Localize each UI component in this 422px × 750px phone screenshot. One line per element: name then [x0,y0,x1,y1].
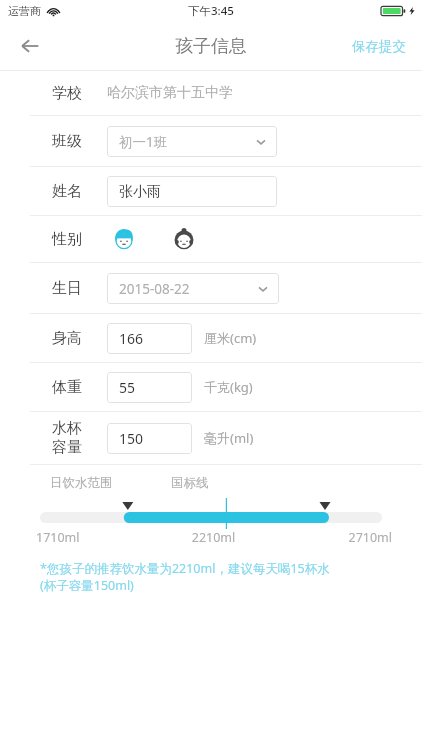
staticText: (杯子容量150ml) [40,577,134,594]
button[interactable]: Boy [107,222,141,256]
staticText: 2210ml [154,529,273,546]
staticText: 哈尔滨市第十五中学 [107,84,233,102]
staticText: 55 [119,378,136,397]
button[interactable]: 生日 [0,263,422,313]
staticText: *您孩子的推荐饮水量为2210ml，建议每天喝15杯水 [40,560,330,577]
staticText: 初一1班 [119,133,168,151]
staticText: 姓名 [52,182,88,201]
button[interactable]: 姓名 [0,167,422,215]
button[interactable]: 学校 [0,71,422,115]
staticText: 孩子信息 [175,35,247,58]
button[interactable]: 166 [107,323,192,354]
staticText: 下午3:45 [188,3,234,19]
button[interactable]: 初一1班 [107,126,277,157]
button[interactable]: 55 [107,372,192,403]
staticText: 千克(kg) [204,378,253,396]
button[interactable]: 身高 [0,314,422,362]
button[interactable]: 性别 [0,216,422,262]
staticText: 厘米(cm) [204,329,257,347]
button[interactable]: Back [8,24,52,68]
staticText: 容量 [52,438,82,457]
staticText: 1710ml [36,529,154,546]
staticText: 166 [119,329,144,348]
button[interactable] [40,495,382,525]
staticText: 张小雨 [119,183,161,201]
staticText: 性别 [52,230,88,249]
staticText: 保存提交 [352,38,406,55]
button[interactable]: 水杯 [0,412,422,464]
staticText: 体重 [52,378,88,397]
staticText: 班级 [52,132,88,151]
staticText: 150 [119,429,144,448]
button[interactable]: 150 [107,423,192,454]
button[interactable]: Girl [167,222,201,256]
staticText: 2015-08-22 [119,280,190,298]
staticText: 生日 [52,279,88,298]
staticText: 学校 [52,84,88,103]
staticText: 2710ml [273,529,392,546]
staticText: 日饮水范围 [50,475,113,491]
button[interactable]: 体重 [0,363,422,411]
button[interactable]: 保存提交 [348,30,410,63]
staticText: 身高 [52,329,88,348]
button[interactable]: 张小雨 [107,176,277,207]
staticText: 运营商 [8,4,41,18]
staticText: 毫升(ml) [204,429,254,447]
staticText: 水杯 [52,419,82,438]
staticText: 国标线 [171,475,209,491]
button[interactable]: 2015-08-22 [107,273,279,304]
button[interactable]: 班级 [0,116,422,166]
